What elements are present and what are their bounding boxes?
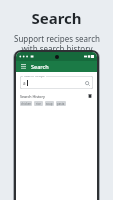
button[interactable]: chicken <box>20 101 32 106</box>
staticText: soup <box>46 102 53 106</box>
staticText: rice <box>36 102 41 106</box>
button[interactable]: Open navigation menu <box>20 63 27 70</box>
staticText: pasta <box>57 102 65 106</box>
button[interactable]: Search <box>84 80 90 86</box>
staticText: Search Recipe <box>24 76 45 78</box>
staticText: Support recipes search with search histo… <box>14 33 100 55</box>
staticText: a <box>23 80 26 86</box>
button[interactable]: soup <box>45 101 54 106</box>
staticText: Search <box>31 8 82 28</box>
button[interactable]: pasta <box>56 101 66 106</box>
button[interactable]: Clear search history <box>87 93 93 99</box>
button[interactable]: rice <box>34 101 43 106</box>
staticText: chicken <box>21 102 31 106</box>
staticText: Search <box>31 63 49 70</box>
staticText: Search History <box>20 94 45 99</box>
button[interactable]: Search Recipe <box>20 76 93 89</box>
